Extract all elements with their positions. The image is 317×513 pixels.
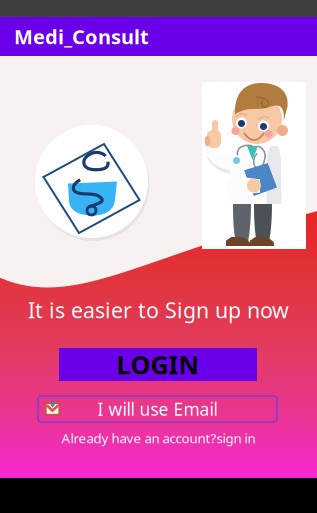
staticText: It is easier to Sign up now [28, 296, 289, 324]
button[interactable]: LOGIN [59, 348, 257, 381]
staticText: I will use Email [97, 397, 217, 420]
staticText: LOGIN [116, 348, 199, 381]
button[interactable]: I will use Email [38, 396, 277, 422]
staticText: Medi_Consult [14, 23, 149, 50]
staticText: Already have an account?sign in [61, 429, 255, 447]
button[interactable]: Already have an account?sign in [0, 431, 317, 445]
